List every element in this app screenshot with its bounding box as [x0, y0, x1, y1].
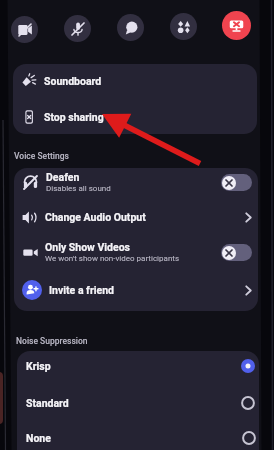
button[interactable]: Krisp — [17, 348, 259, 384]
staticText: Soundboard — [44, 75, 102, 87]
button[interactable]: Soundboard — [13, 63, 257, 98]
button[interactable]: Standard — [17, 385, 259, 421]
button[interactable]: Toggle, off — [221, 174, 252, 191]
staticText: Standard — [26, 397, 241, 409]
button[interactable]: Stop screen share — [222, 11, 251, 40]
staticText: Deafen — [46, 171, 80, 183]
button[interactable]: None — [18, 420, 260, 450]
button[interactable]: Stop sharing — [13, 99, 257, 134]
staticText: Krisp — [26, 360, 241, 372]
button[interactable]: Toggle, off — [221, 244, 252, 261]
staticText: Stop sharing — [44, 111, 104, 123]
staticText: Noise Suppression — [16, 336, 88, 346]
button[interactable]: Unmute — [64, 15, 91, 42]
button[interactable]: Invite a friend — [15, 272, 258, 308]
staticText: Voice Settings — [14, 151, 69, 161]
staticText: Change Audio Output — [45, 211, 245, 223]
staticText: Only Show Videos — [45, 241, 130, 253]
button[interactable]: Open chat — [117, 14, 144, 41]
button[interactable]: Activities — [170, 13, 197, 40]
staticText: Disables all sound — [46, 184, 111, 193]
button[interactable]: Only Show Videos — [15, 234, 258, 270]
staticText: Invite a friend — [49, 284, 245, 296]
button[interactable]: Turn on camera — [11, 16, 38, 43]
button[interactable]: Deafen — [14, 164, 258, 200]
staticText: We won't show non-video participants — [45, 254, 180, 263]
staticText: None — [26, 432, 242, 444]
button[interactable]: Change Audio Output — [14, 199, 257, 235]
